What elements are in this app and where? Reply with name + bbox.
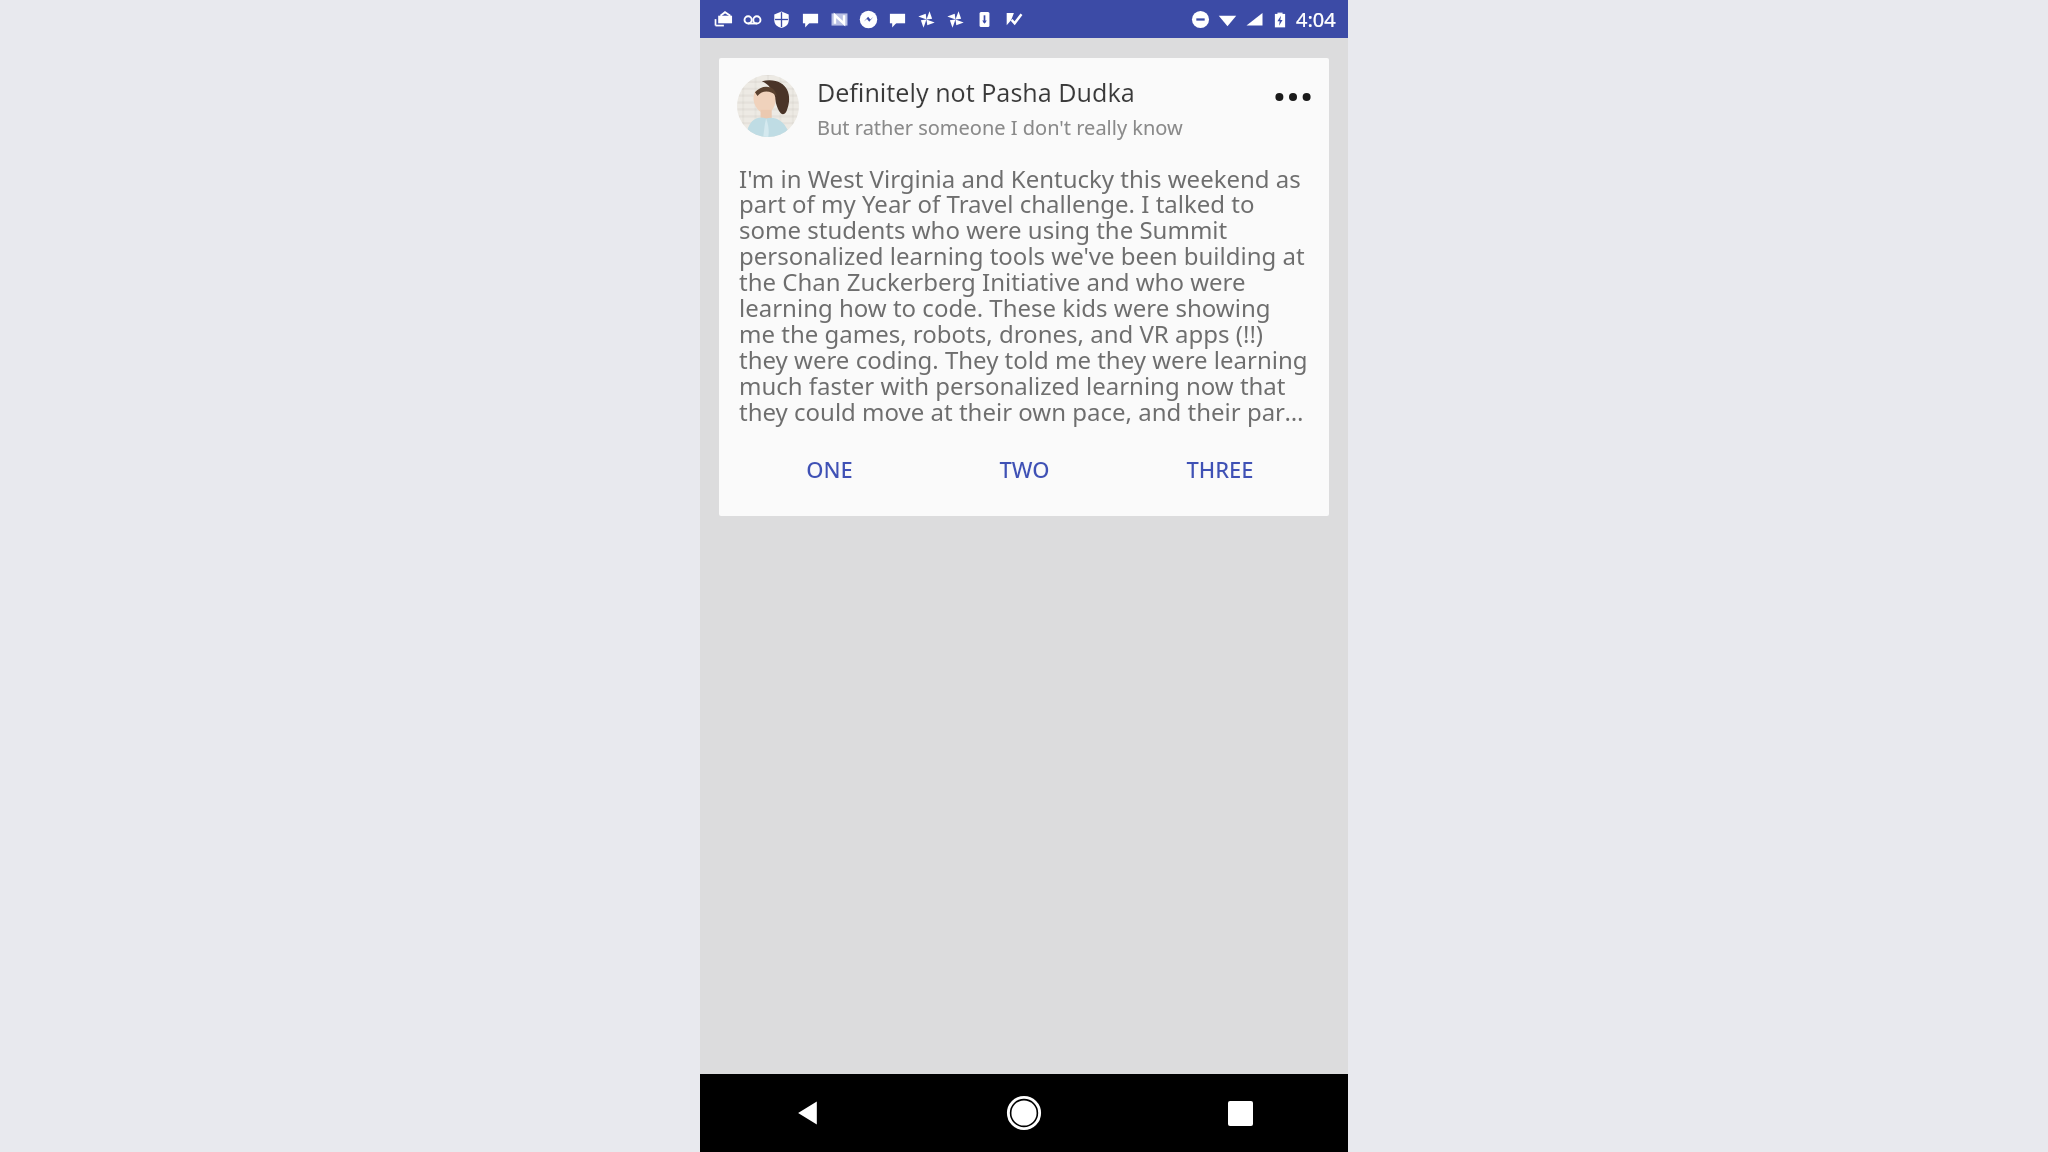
button[interactable]: ONE — [731, 448, 927, 490]
staticText: Definitely not Pasha Dudka — [817, 75, 1135, 109]
staticText: ONE — [806, 454, 853, 484]
button[interactable]: Home — [916, 1074, 1132, 1152]
button[interactable]: Definitely not Pasha Dudka — [719, 58, 1329, 149]
button[interactable]: More options — [1271, 75, 1315, 119]
staticText: I'm in West Virginia and Kentucky this w… — [739, 162, 1311, 428]
button[interactable]: Back — [700, 1074, 916, 1152]
staticText: TWO — [999, 454, 1050, 484]
button[interactable]: Recent apps — [1132, 1074, 1348, 1152]
button[interactable]: TWO — [927, 448, 1122, 490]
staticText: But rather someone I don't really know — [817, 114, 1183, 141]
staticText: 4:04 — [1296, 6, 1336, 33]
button[interactable]: THREE — [1122, 448, 1317, 490]
staticText: THREE — [1186, 454, 1254, 484]
